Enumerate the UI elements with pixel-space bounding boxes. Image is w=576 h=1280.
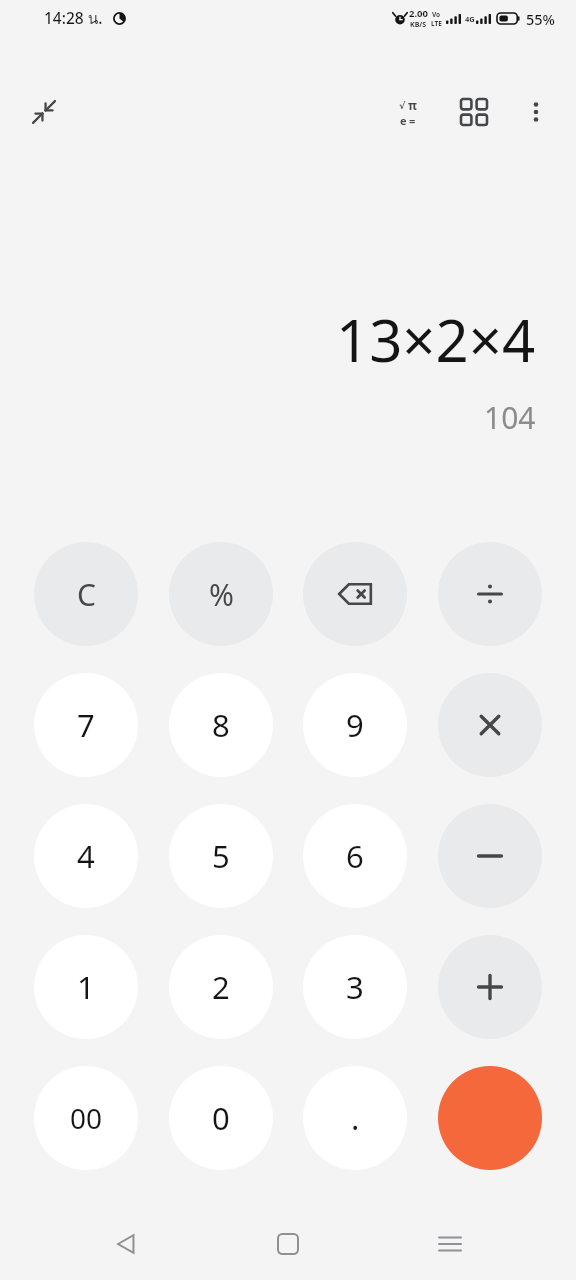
staticText: 9 [346, 704, 364, 746]
button[interactable]: Back [90, 1208, 162, 1280]
staticText: 55% [526, 9, 555, 29]
button[interactable]: % [169, 542, 273, 646]
staticText: C [77, 574, 96, 615]
staticText: 7 [77, 704, 95, 746]
button[interactable]: Home [252, 1208, 324, 1280]
button[interactable]: Scientific mode [382, 86, 434, 138]
staticText: 00 [70, 1099, 103, 1137]
button[interactable]: Divide [438, 542, 542, 646]
staticText: Vo [432, 10, 441, 19]
button[interactable]: Unit converter [448, 86, 500, 138]
button[interactable]: More options [510, 86, 562, 138]
button[interactable]: Minus [438, 804, 542, 908]
button[interactable]: 00 [34, 1066, 138, 1170]
button[interactable]: . [303, 1066, 407, 1170]
button[interactable]: 8 [169, 673, 273, 777]
staticText: √ [399, 100, 406, 111]
staticText: e [400, 113, 407, 128]
staticText: 8 [212, 704, 230, 746]
button[interactable]: 1 [34, 935, 138, 1039]
staticText: 4G [465, 14, 475, 24]
button[interactable]: Multiply [438, 673, 542, 777]
staticText: 0 [212, 1097, 230, 1139]
staticText: % [209, 574, 234, 615]
staticText: LTE [431, 19, 442, 28]
staticText: 13×2×4 [336, 300, 536, 379]
button[interactable]: Backspace [303, 542, 407, 646]
staticText: KB/S [410, 20, 427, 30]
staticText: 14:28 น. [44, 6, 103, 31]
staticText: π [408, 97, 417, 113]
button[interactable]: Plus [438, 935, 542, 1039]
button[interactable]: 0 [169, 1066, 273, 1170]
button[interactable]: Collapse [18, 86, 70, 138]
staticText: 104 [484, 397, 536, 438]
staticText: 5 [212, 835, 230, 877]
staticText: 1 [77, 966, 95, 1008]
staticText: 3 [346, 966, 364, 1008]
button[interactable]: Equals [438, 1066, 542, 1170]
button[interactable]: 6 [303, 804, 407, 908]
button[interactable]: 7 [34, 673, 138, 777]
staticText: 4 [77, 835, 95, 877]
button[interactable]: Recent apps [414, 1208, 486, 1280]
staticText: 6 [346, 835, 364, 877]
staticText: 2 [212, 966, 230, 1008]
button[interactable]: 9 [303, 673, 407, 777]
button[interactable]: 5 [169, 804, 273, 908]
staticText: = [409, 113, 416, 128]
button[interactable]: 2 [169, 935, 273, 1039]
staticText: . [351, 1097, 360, 1139]
button[interactable]: 3 [303, 935, 407, 1039]
button[interactable]: C [34, 542, 138, 646]
staticText: 2.00 [409, 7, 428, 20]
button[interactable]: 4 [34, 804, 138, 908]
